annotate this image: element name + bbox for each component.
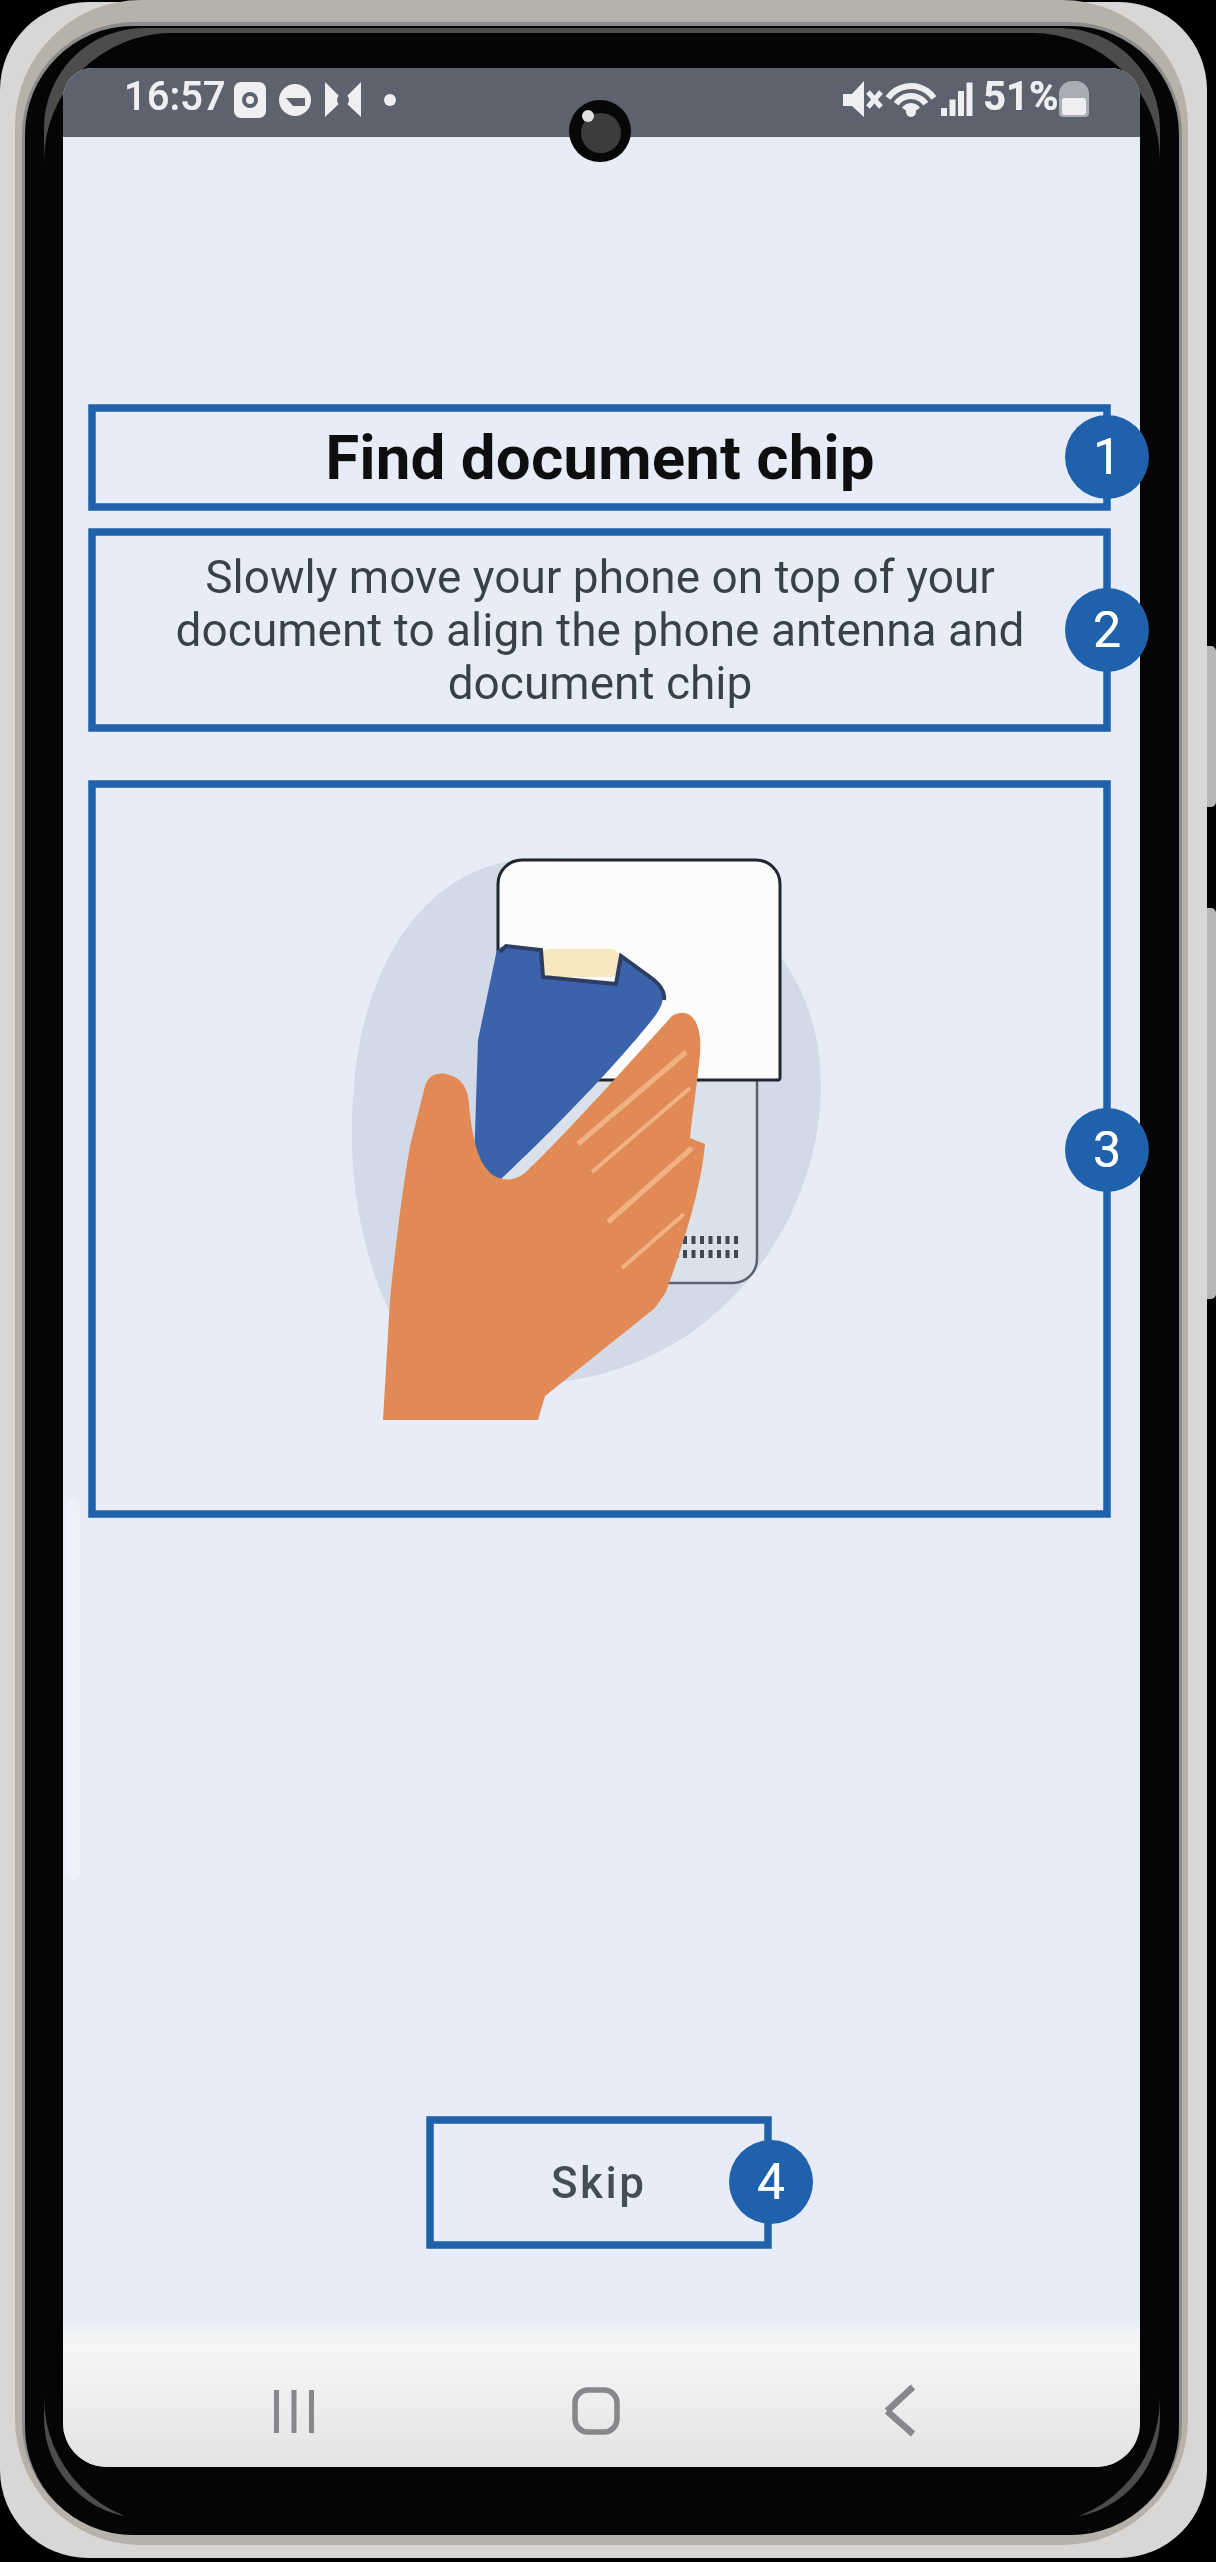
staticText: Slowly move your phone on top of your do…	[170, 550, 1030, 710]
staticText: Find document chip	[325, 421, 875, 494]
staticText: 2	[1093, 601, 1122, 660]
staticText: 4	[757, 2153, 786, 2212]
staticText: 1	[1093, 428, 1122, 487]
button[interactable]: Skip	[430, 2120, 768, 2245]
staticText: 51%	[983, 73, 1059, 120]
button[interactable]: Find document chip	[92, 408, 1107, 507]
staticText: 16:57	[124, 73, 226, 120]
staticText: 3	[1093, 1121, 1122, 1180]
staticText: Skip	[551, 2157, 647, 2209]
